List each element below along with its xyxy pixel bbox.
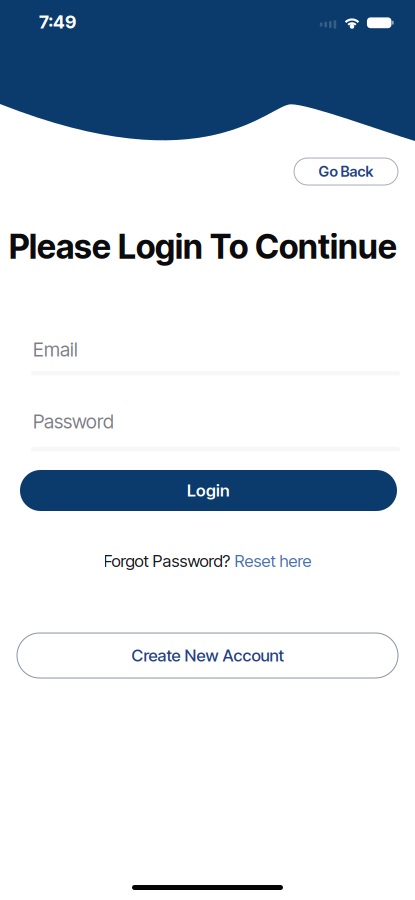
staticText: Go Back: [318, 163, 373, 180]
staticText: Login: [187, 480, 230, 501]
staticText: Email: [33, 338, 78, 361]
staticText: Password: [33, 410, 114, 433]
button[interactable]: Reset here: [234, 551, 311, 571]
button[interactable]: Login: [20, 470, 397, 511]
button[interactable]: Go Back: [294, 158, 398, 185]
staticText: 7:49: [39, 11, 76, 33]
staticText: Please Login To Continue: [9, 226, 397, 267]
staticText: Forgot Password?: [103, 551, 230, 571]
button[interactable]: Create New Account: [17, 633, 398, 678]
staticText: Create New Account: [131, 645, 283, 666]
staticText: Reset here: [234, 551, 311, 571]
